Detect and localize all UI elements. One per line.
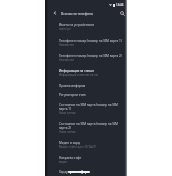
staticText: 14:44 bbox=[116, 3, 124, 7]
staticText: Неизвестен bbox=[59, 43, 75, 47]
staticText: Няма сигнал bbox=[59, 111, 76, 115]
button[interactable]: Накратко софт bbox=[45, 152, 127, 167]
staticText: Модел: redmi-a pro (K72A47) bbox=[59, 145, 96, 149]
button[interactable]: Телефонен номер (номер на SIM карта 1) bbox=[45, 35, 127, 50]
staticText: Състояние на SIM карта (номер на SIM кар… bbox=[59, 103, 123, 111]
button[interactable]: Състояние на SIM карта (номер на SIM кар… bbox=[45, 99, 127, 118]
button[interactable]: Модел и хард bbox=[45, 137, 127, 152]
button[interactable]: Search bbox=[117, 7, 127, 19]
button[interactable]: Правна информа bbox=[45, 81, 127, 90]
staticText: Името на устройството bbox=[59, 23, 95, 27]
staticText: Неизвестен bbox=[59, 58, 75, 62]
button[interactable]: Харду bbox=[45, 167, 127, 176]
button[interactable]: Името на устройството bbox=[45, 19, 127, 35]
staticText: Състояние на SIM карта (номер на SIM кар… bbox=[59, 122, 123, 130]
staticText: Няма сигнал bbox=[59, 130, 76, 134]
staticText: ерна информ bbox=[68, 170, 90, 174]
staticText: Правна информа bbox=[59, 84, 86, 88]
staticText: redmi pri bbox=[59, 27, 71, 31]
staticText: Информация и контакт за спе bbox=[59, 73, 99, 77]
staticText: Харду bbox=[59, 170, 68, 174]
button[interactable]: Регулаторни етик bbox=[45, 90, 127, 99]
staticText: Накратко софт bbox=[59, 156, 82, 160]
button[interactable]: Телефонен номер (номер на SIM карта 2) bbox=[45, 50, 127, 65]
staticText: Телефонен номер (номер на SIM карта 1) bbox=[59, 39, 122, 43]
staticText: Телефонен номер (номер на SIM карта 2) bbox=[59, 54, 122, 58]
staticText: Модел и хард bbox=[59, 141, 80, 145]
staticText: Информация за спешн bbox=[59, 69, 95, 73]
button[interactable]: Back bbox=[45, 7, 61, 19]
button[interactable]: Състояние на SIM карта (номер на SIM кар… bbox=[45, 118, 127, 137]
staticText: Регулаторни етик bbox=[59, 93, 86, 97]
staticText: видео bbox=[59, 160, 67, 164]
button[interactable]: Информация за спешн bbox=[45, 65, 127, 81]
staticText: Всичко за телефона bbox=[61, 11, 93, 15]
